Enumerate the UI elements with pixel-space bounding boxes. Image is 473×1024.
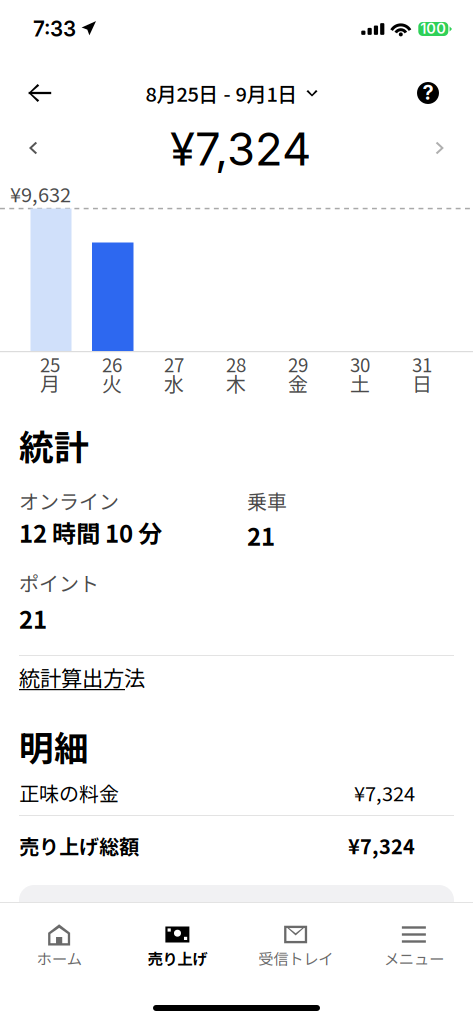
staticText: 31 (412, 350, 432, 377)
staticText: オンライン (19, 486, 119, 515)
button[interactable]: 8月25日 - 9月1日 (145, 70, 317, 116)
staticText: 水 (164, 368, 184, 397)
staticText: ¥7,324 (170, 122, 311, 176)
staticText: 正味の料金 (19, 778, 119, 807)
staticText: 100 (420, 20, 446, 37)
staticText: 木 (226, 368, 246, 397)
staticText: 受信トレイ (258, 947, 333, 969)
staticText: 明細 (19, 721, 89, 771)
staticText: ¥7,324 (348, 831, 415, 860)
staticText: ¥7,324 (354, 778, 415, 807)
button[interactable]: Back (0, 70, 90, 116)
staticText: 統計 (19, 420, 89, 470)
staticText: 8月25日 - 9月1日 (145, 78, 297, 107)
staticText: ポイント (19, 568, 99, 597)
button[interactable]: 統計算出方法 (19, 659, 159, 698)
staticText: 7:33 (33, 16, 76, 41)
staticText: ? (422, 80, 433, 105)
staticText: 27 (164, 350, 184, 377)
staticText: ホーム (37, 947, 82, 969)
staticText: 日 (412, 368, 432, 397)
staticText: ¥9,632 (10, 179, 71, 208)
staticText: 統計算出方法 (19, 662, 145, 692)
staticText: 21 (247, 518, 275, 553)
staticText: 21 (19, 601, 47, 636)
staticText: 26 (102, 350, 122, 377)
staticText: 金 (288, 368, 308, 397)
staticText: 売り上げ (147, 947, 207, 969)
button[interactable]: Next week (384, 122, 473, 174)
staticText: 12 時間 10 分 (19, 515, 162, 550)
staticText: 29 (288, 350, 308, 377)
staticText: 月 (40, 368, 60, 397)
staticText: 土 (350, 368, 370, 397)
staticText: 30 (350, 350, 370, 377)
button[interactable]: 受信トレイ (236, 903, 355, 974)
button[interactable]: Help (371, 70, 473, 116)
staticText: 乗車 (247, 486, 287, 515)
button[interactable]: メニュー (355, 903, 473, 974)
button[interactable]: 売り上げ (118, 903, 236, 974)
staticText: 売り上げ総額 (19, 831, 139, 860)
staticText: 25 (40, 350, 60, 377)
button[interactable]: ホーム (0, 903, 118, 974)
staticText: 28 (226, 350, 246, 377)
staticText: 火 (102, 368, 122, 397)
staticText: メニュー (384, 947, 444, 969)
button[interactable]: Previous week (0, 122, 89, 174)
